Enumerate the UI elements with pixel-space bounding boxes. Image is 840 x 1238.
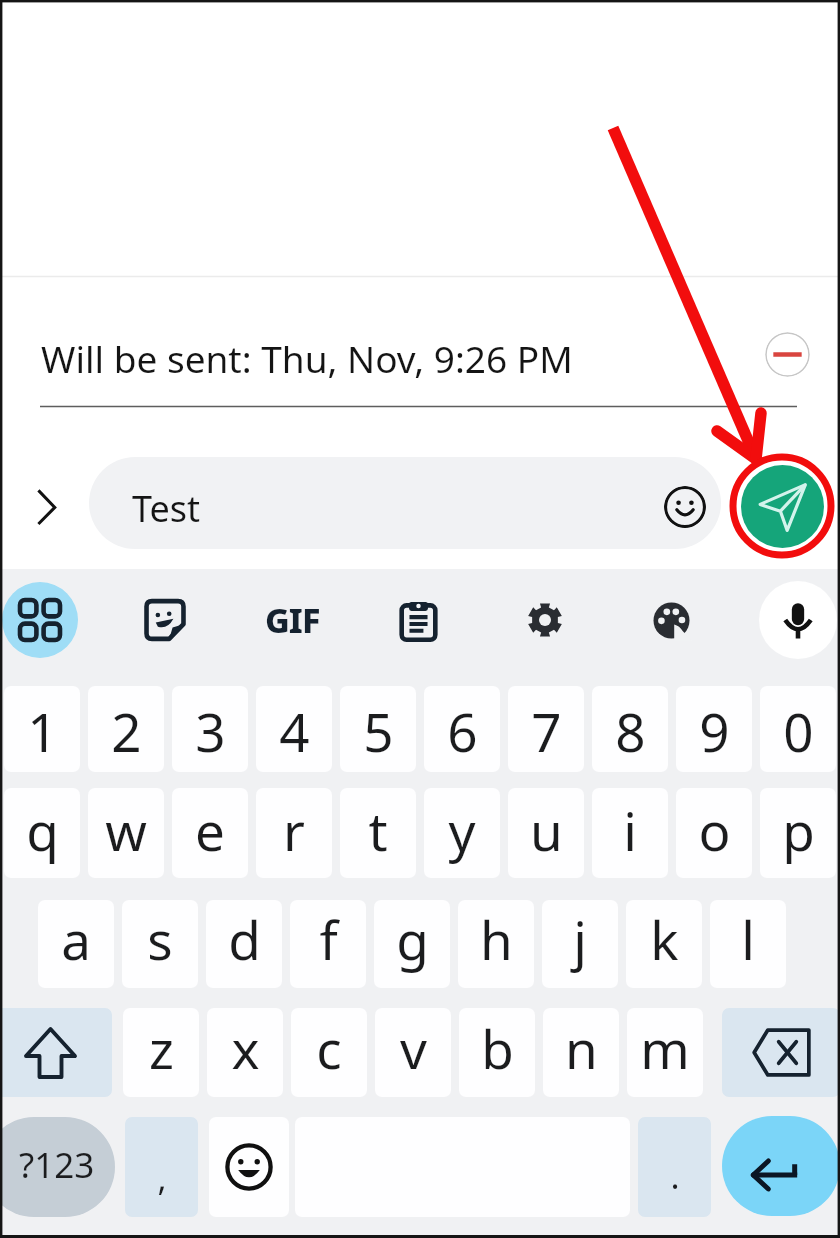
staticText: i (623, 794, 637, 866)
staticText: h (480, 903, 513, 975)
button[interactable]: Settings (507, 582, 583, 658)
button[interactable]: Emoji (664, 486, 706, 528)
staticText: s (147, 903, 173, 975)
staticText: l (741, 903, 755, 975)
button[interactable]: Stickers (127, 582, 203, 658)
button[interactable]: 6 (424, 686, 500, 772)
staticText: GIF (265, 597, 320, 643)
button[interactable]: k (626, 900, 702, 988)
button[interactable]: p (760, 788, 836, 878)
staticText: 4 (279, 695, 310, 767)
button[interactable]: l (710, 900, 786, 988)
staticText: 9 (699, 695, 730, 767)
staticText: 6 (447, 695, 478, 767)
staticText: j (573, 903, 587, 975)
button[interactable]: 1 (4, 686, 80, 772)
button[interactable]: c (291, 1008, 367, 1097)
staticText: x (231, 1012, 260, 1084)
button[interactable]: Backspace (722, 1008, 840, 1097)
button[interactable]: u (508, 788, 584, 878)
button[interactable]: e (172, 788, 248, 878)
staticText: 2 (111, 695, 142, 767)
button[interactable]: 3 (172, 686, 248, 772)
button[interactable]: Test (89, 457, 721, 549)
button[interactable]: Apps (2, 582, 78, 658)
button[interactable]: Shift (0, 1008, 112, 1097)
staticText: m (640, 1012, 690, 1084)
staticText: 7 (531, 695, 562, 767)
button[interactable]: 5 (340, 686, 416, 772)
staticText: e (195, 794, 225, 866)
staticText: 8 (615, 695, 646, 767)
staticText: . (670, 1153, 680, 1199)
staticText: g (396, 903, 429, 975)
staticText: 0 (783, 695, 814, 767)
staticText: t (368, 794, 388, 866)
staticText: Will be sent: Thu, Nov, 9:26 PM (41, 333, 573, 383)
button[interactable]: z (123, 1008, 199, 1097)
button[interactable]: x (207, 1008, 283, 1097)
button[interactable]: Cancel scheduled send (765, 332, 810, 377)
button[interactable]: d (206, 900, 282, 988)
staticText: 3 (195, 695, 226, 767)
button[interactable]: b (459, 1008, 535, 1097)
button[interactable]: n (543, 1008, 619, 1097)
button[interactable]: v (375, 1008, 451, 1097)
button[interactable]: r (256, 788, 332, 878)
button[interactable]: f (290, 900, 366, 988)
button[interactable]: Send (741, 465, 824, 548)
staticText: o (698, 794, 731, 866)
button[interactable]: Themes (633, 582, 709, 658)
staticText: 1 (27, 695, 58, 767)
button[interactable]: Emoji keyboard (209, 1117, 289, 1217)
button[interactable]: 8 (592, 686, 668, 772)
button[interactable]: ?123 (0, 1117, 115, 1217)
staticText: r (283, 794, 305, 866)
staticText: b (481, 1012, 514, 1084)
staticText: a (61, 903, 91, 975)
button[interactable]: GIF (254, 582, 330, 658)
button[interactable]: Expand actions (17, 477, 77, 537)
button[interactable]: a (38, 900, 114, 988)
button[interactable]: m (627, 1008, 703, 1097)
button[interactable]: 2 (88, 686, 164, 772)
button[interactable]: q (4, 788, 80, 878)
button[interactable]: 4 (256, 686, 332, 772)
staticText: n (565, 1012, 598, 1084)
staticText: q (26, 794, 59, 866)
staticText: Test (132, 484, 201, 533)
staticText: ?123 (19, 1141, 95, 1189)
button[interactable]: w (88, 788, 164, 878)
button[interactable]: 9 (676, 686, 752, 772)
button[interactable]: Enter (722, 1116, 840, 1216)
staticText: k (650, 903, 679, 975)
staticText: v (400, 1012, 427, 1084)
button[interactable]: g (374, 900, 450, 988)
staticText: w (105, 794, 147, 866)
staticText: , (157, 1155, 167, 1201)
staticText: u (530, 794, 563, 866)
button[interactable]: t (340, 788, 416, 878)
staticText: z (149, 1012, 174, 1084)
button[interactable]: s (122, 900, 198, 988)
button[interactable]: Voice input (759, 581, 837, 659)
button[interactable]: o (676, 788, 752, 878)
button[interactable]: 7 (508, 686, 584, 772)
button[interactable]: h (458, 900, 534, 988)
staticText: d (228, 903, 261, 975)
button[interactable]: i (592, 788, 668, 878)
staticText: f (319, 903, 338, 975)
staticText: 5 (363, 695, 394, 767)
button[interactable]: y (424, 788, 500, 878)
button[interactable]: Clipboard (380, 582, 456, 658)
button[interactable]: . (638, 1117, 711, 1217)
staticText: p (782, 794, 815, 866)
button[interactable]: 0 (760, 686, 836, 772)
staticText: c (316, 1012, 342, 1084)
button[interactable]: , (125, 1117, 198, 1217)
button[interactable]: j (542, 900, 618, 988)
staticText: y (448, 794, 476, 866)
